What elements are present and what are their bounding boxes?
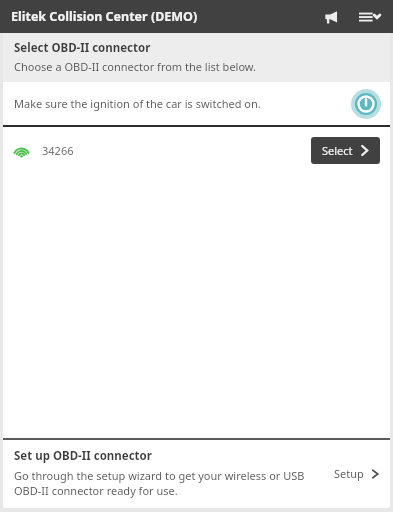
staticText: Setup xyxy=(334,466,364,481)
staticText: Choose a OBD-II connector from the list … xyxy=(14,59,257,74)
staticText: 34266 xyxy=(42,143,74,158)
staticText: Elitek Collision Center (DEMO) xyxy=(11,8,198,25)
staticText: Go through the setup wizard to get your … xyxy=(14,468,328,498)
button[interactable]: Announcements xyxy=(317,2,347,32)
staticText: Set up OBD-II connector xyxy=(14,448,152,464)
button[interactable]: Set up OBD-II connector xyxy=(3,440,390,508)
button[interactable]: Ignition info xyxy=(350,88,382,120)
button[interactable]: Select xyxy=(311,137,380,164)
staticText: Select OBD-II connector xyxy=(14,40,151,56)
staticText: Select xyxy=(322,143,353,158)
staticText: Make sure the ignition of the car is swi… xyxy=(14,96,261,111)
button[interactable]: Menu xyxy=(353,0,387,33)
